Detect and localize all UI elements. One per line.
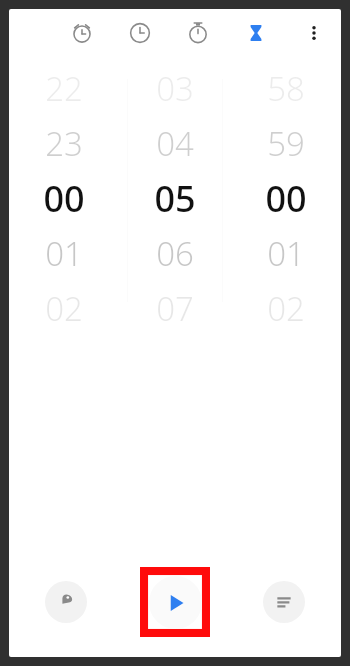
button[interactable]: 01 bbox=[230, 226, 341, 281]
button[interactable]: 58 bbox=[230, 61, 341, 116]
button[interactable]: 01 bbox=[9, 226, 119, 281]
button[interactable]: Start timer bbox=[149, 576, 202, 629]
button[interactable]: Timer bbox=[239, 16, 273, 50]
button[interactable]: Timer list bbox=[263, 581, 305, 623]
button[interactable]: 05 bbox=[119, 171, 230, 226]
button[interactable]: Add label bbox=[45, 581, 87, 623]
staticText: 04 bbox=[156, 121, 194, 166]
staticText: 58 bbox=[267, 66, 305, 111]
staticText: 01 bbox=[45, 231, 83, 276]
button[interactable]: More options bbox=[297, 16, 331, 50]
button[interactable]: 00 bbox=[9, 171, 119, 226]
button[interactable]: 59 bbox=[230, 116, 341, 171]
staticText: 03 bbox=[156, 66, 194, 111]
button[interactable]: Stopwatch bbox=[181, 16, 215, 50]
staticText: 00 bbox=[43, 174, 85, 223]
button[interactable]: 06 bbox=[119, 226, 230, 281]
button[interactable]: 07 bbox=[119, 281, 230, 336]
button[interactable]: 23 bbox=[9, 116, 119, 171]
staticText: 02 bbox=[267, 286, 305, 331]
staticText: 00 bbox=[265, 174, 307, 223]
staticText: 07 bbox=[156, 286, 194, 331]
button[interactable]: 02 bbox=[9, 281, 119, 336]
button[interactable]: Alarm bbox=[65, 16, 99, 50]
staticText: 06 bbox=[156, 231, 194, 276]
staticText: 01 bbox=[267, 231, 305, 276]
staticText: 23 bbox=[45, 121, 83, 166]
button[interactable]: 04 bbox=[119, 116, 230, 171]
staticText: 22 bbox=[45, 66, 83, 111]
button[interactable]: 00 bbox=[230, 171, 341, 226]
button[interactable]: Clock bbox=[123, 16, 157, 50]
button[interactable]: 02 bbox=[230, 281, 341, 336]
staticText: 02 bbox=[45, 286, 83, 331]
staticText: 05 bbox=[154, 174, 196, 223]
staticText: 59 bbox=[267, 121, 305, 166]
